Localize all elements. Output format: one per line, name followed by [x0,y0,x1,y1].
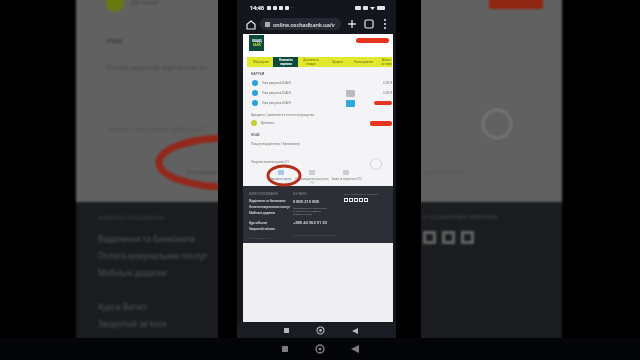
staticText: Депозит [131,0,160,8]
staticText: КОРИСНІ ПОСИЛАННЯ [98,214,165,222]
staticText: 0.00 ₴ [383,91,392,95]
button[interactable]: Депозити та вклади [300,57,322,67]
staticText: Платежі та перекази [279,58,293,66]
staticText: Розпорядження рахунком (1) [295,177,329,185]
staticText: Курси Валют [249,221,268,225]
button[interactable]: Home [309,338,331,360]
staticText: Замовити картку [270,177,292,181]
staticText: ··· [291,5,295,10]
staticText: Кредити [332,60,343,64]
staticText: МИ У СОЦІАЛЬНИХ МЕРЕЖАХ [412,213,498,221]
button[interactable]: Back [344,338,366,360]
staticText: Мої рахунки [253,60,269,64]
staticText: Налаштування [354,60,373,64]
staticText: Зворотній зв'язок [249,227,275,231]
staticText: Вийти з системи [381,58,392,66]
staticText: безкоштовно зі стаціонарних та мобільних… [293,206,328,215]
button[interactable]: Recents [274,338,296,360]
staticText: 14:46 [250,4,265,11]
button[interactable]: New tab [346,18,358,30]
staticText: Депозит [261,121,274,125]
button[interactable]: Recents [280,324,293,337]
staticText: Відділення та банкомати [98,233,196,244]
staticText: Зворотній зв'язок [98,318,167,329]
button[interactable]: Home [314,324,327,337]
button[interactable]: Visa рахунок (UAH) [243,98,393,108]
button[interactable]: Мої рахунки [248,57,273,67]
staticText: Відділення та банкомати [249,199,286,203]
staticText: Пошук додатків відп'ячних бо [106,63,208,73]
staticText: Рахунок оплати картки (1) [251,160,289,164]
button[interactable]: Розпорядження рахунком (1) [295,170,329,185]
staticText: 0 800 210 800 [293,199,319,204]
staticText: ІНШЕ [106,37,123,45]
staticText: КОНТАКТИ [293,192,307,196]
staticText: Пошук відділення / банкомату [251,141,300,145]
staticText: МИ У СОЦІАЛЬНИХ МЕРЕЖАХ [344,192,379,195]
button[interactable]: Кредити [325,57,349,67]
staticText: Visa рахунок (UAH) [262,91,291,95]
staticText: © Oschadbank. ua [249,236,270,239]
staticText: 0.00 ₴ [383,81,392,85]
button[interactable]: online.oschadbank.ua/v [260,18,341,30]
staticText: Депозити та вклади [303,58,319,66]
staticText: КАРТКИ [251,71,265,75]
staticText: Оплата комунальних послуг [98,250,208,261]
staticText: Visa рахунок (UAH) [262,81,291,85]
button[interactable]: More options [379,18,391,30]
button[interactable]: Tabs [363,18,375,30]
button[interactable]: Back [348,324,361,337]
button[interactable]: Home [245,19,256,30]
staticText: Курси Валют [98,301,148,312]
staticText: ОЩАД [252,39,262,43]
staticText: Усі права захищені. Розробка сайту 2021 [293,234,337,237]
button[interactable]: Налаштування [350,57,376,67]
button[interactable]: Депозит [251,118,392,128]
staticText: Заяви та звернення (15) [331,177,362,181]
button[interactable]: Платежі та перекази [273,57,298,67]
button[interactable]: Visa рахунок (UAH) [243,78,393,88]
staticText: Мобільні додатки [98,267,167,278]
staticText: Кредити / депозитні та поточні рахунки [251,112,315,116]
staticText: Visa рахунок (UAH) [262,101,291,105]
button[interactable]: Visa рахунок (UAH) [243,88,393,98]
button[interactable]: Замовити картку [264,170,298,181]
staticText: online.oschadbank.ua/v [273,21,335,28]
button[interactable]: Вийти з системи [374,57,399,67]
staticText: +380 44 363 01 33 [293,220,327,225]
staticText: БАНК [253,43,261,47]
button[interactable]: Заяви та звернення (15) [329,170,363,181]
staticText: Оплата комунальних послуг [249,205,291,209]
staticText: КОРИСНІ ПОСИЛАННЯ [249,192,278,196]
staticText: ІНШЕ [251,132,260,136]
staticText: Мобільні додатки [249,211,275,215]
